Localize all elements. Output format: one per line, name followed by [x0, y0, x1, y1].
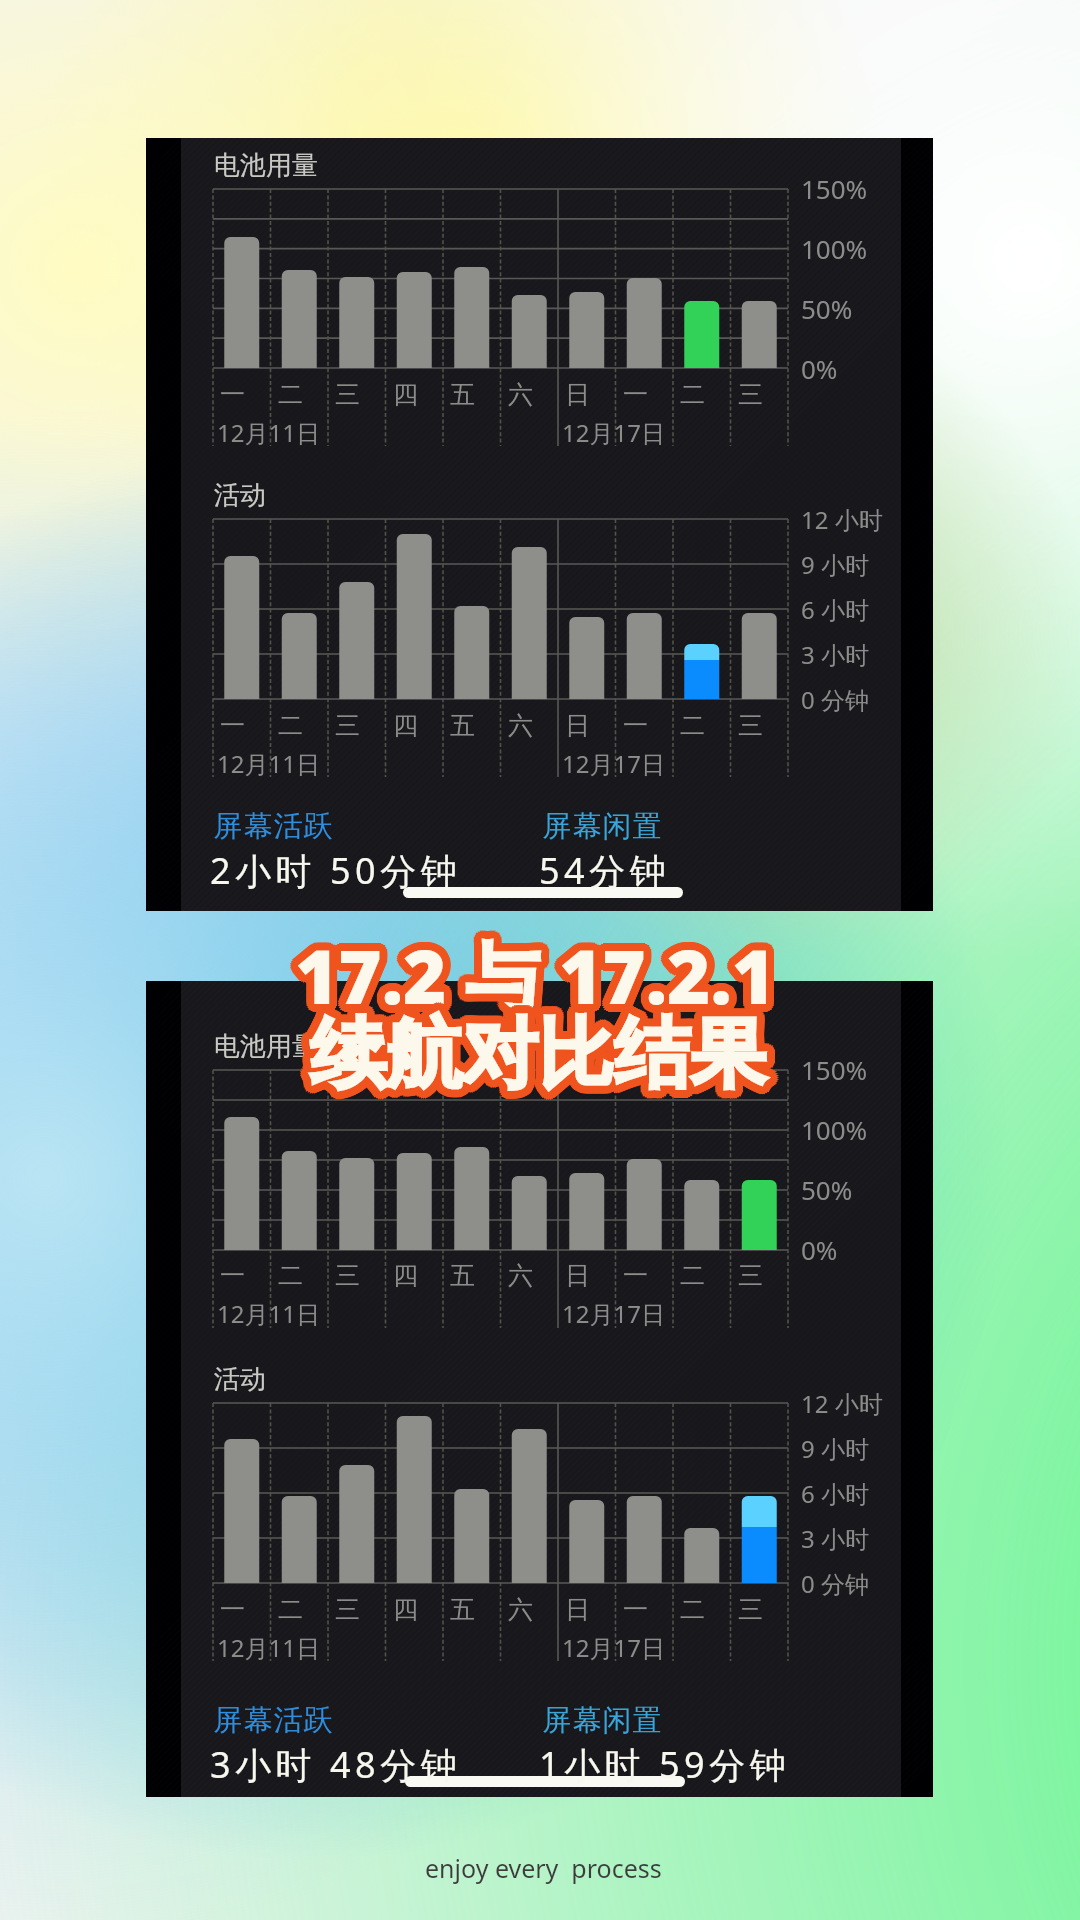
staticText: 续航对比结果 — [312, 999, 768, 1095]
staticText: 续航对比结果 — [314, 1000, 770, 1096]
staticText: 续航对比结果 — [316, 1013, 772, 1109]
staticText: 9 小时 — [801, 1432, 869, 1465]
staticText: 12月11日 — [217, 747, 320, 780]
staticText: 屏幕活跃 — [213, 808, 333, 845]
staticText: 四 — [393, 1260, 418, 1291]
staticText: 17.2 与 17.2.1 — [291, 932, 772, 1033]
staticText: 一 — [220, 379, 245, 410]
staticText: 17.2 与 17.2.1 — [297, 917, 778, 1018]
staticText: 三 — [738, 710, 763, 741]
staticText: 1小时 59分钟 — [539, 1740, 791, 1789]
staticText: 五 — [450, 379, 475, 410]
staticText: 12月11日 — [217, 1297, 320, 1330]
staticText: 12 小时 — [801, 503, 883, 536]
staticText: 活动 — [214, 1363, 266, 1396]
staticText: 100% — [801, 1112, 868, 1147]
staticText: 六 — [508, 710, 533, 741]
staticText: 续航对比结果 — [302, 1005, 758, 1101]
staticText: 续航对比结果 — [302, 1009, 758, 1105]
staticText: 3 小时 — [801, 638, 869, 671]
staticText: 三 — [335, 1594, 360, 1625]
staticText: 四 — [393, 379, 418, 410]
staticText: 六 — [508, 1260, 533, 1291]
staticText: 二 — [680, 1260, 705, 1291]
staticText: 五 — [450, 1594, 475, 1625]
staticText: 三 — [335, 379, 360, 410]
staticText: 续航对比结果 — [310, 999, 766, 1095]
staticText: 二 — [278, 1260, 303, 1291]
staticText: 日 — [565, 1260, 590, 1291]
staticText: 续航对比结果 — [308, 1015, 764, 1111]
staticText: 日 — [565, 1594, 590, 1625]
staticText: 续航对比结果 — [304, 1013, 760, 1109]
staticText: 0% — [801, 1232, 838, 1267]
staticText: 3 小时 — [801, 1522, 869, 1555]
staticText: 屏幕闲置 — [542, 808, 662, 845]
staticText: 17.2 与 17.2.1 — [289, 919, 770, 1020]
staticText: 17.2 与 17.2.1 — [301, 931, 782, 1032]
button[interactable]: enjoy every process — [415, 1843, 665, 1887]
staticText: 12月11日 — [217, 416, 320, 449]
staticText: 六 — [508, 379, 533, 410]
staticText: 续航对比结果 — [303, 1003, 759, 1099]
staticText: 50% — [801, 1172, 853, 1207]
staticText: 12月17日 — [562, 747, 665, 780]
staticText: 一 — [220, 1594, 245, 1625]
staticText: 屏幕活跃 — [213, 1702, 333, 1739]
staticText: 三 — [738, 379, 763, 410]
staticText: 150% — [801, 1052, 868, 1087]
staticText: 屏幕闲置 — [542, 1702, 662, 1739]
staticText: 二 — [278, 379, 303, 410]
staticText: 二 — [278, 710, 303, 741]
staticText: 17.2 与 17.2.1 — [303, 927, 784, 1028]
staticText: 六 — [508, 1594, 533, 1625]
staticText: 续航对比结果 — [317, 1011, 773, 1107]
staticText: 续航对比结果 — [302, 1007, 758, 1103]
staticText: 四 — [393, 1594, 418, 1625]
staticText: 12月17日 — [562, 1631, 665, 1664]
staticText: 续航对比结果 — [303, 1011, 759, 1107]
staticText: 17.2 与 17.2.1 — [287, 927, 768, 1028]
staticText: 日 — [565, 710, 590, 741]
staticText: 续航对比结果 — [318, 1005, 774, 1101]
staticText: 电池用量 — [214, 1030, 318, 1063]
staticText: 150% — [801, 171, 868, 206]
staticText: 0 分钟 — [801, 1567, 869, 1600]
staticText: 17.2 与 17.2.1 — [295, 933, 776, 1034]
staticText: 17.2 与 17.2.1 — [303, 925, 784, 1026]
button[interactable]: iOS 17.2 battery screenshot — [146, 138, 933, 911]
staticText: 电池用量 — [214, 149, 318, 182]
staticText: 100% — [801, 231, 868, 266]
staticText: 17.2 与 17.2.1 — [303, 923, 784, 1024]
staticText: 17.2 与 17.2.1 — [297, 933, 778, 1034]
staticText: 12 小时 — [801, 1387, 883, 1420]
staticText: 12月17日 — [562, 1297, 665, 1330]
staticText: 一 — [623, 379, 648, 410]
staticText: 50% — [801, 291, 853, 326]
staticText: 6 小时 — [801, 1477, 869, 1510]
staticText: 54分钟 — [539, 846, 671, 895]
staticText: 续航对比结果 — [314, 1014, 770, 1110]
staticText: 续航对比结果 — [316, 1001, 772, 1097]
staticText: 17.2 与 17.2.1 — [289, 931, 770, 1032]
button[interactable]: iOS 17.2.1 battery screenshot — [146, 981, 933, 1797]
staticText: 9 小时 — [801, 548, 869, 581]
staticText: 续航对比结果 — [318, 1009, 774, 1105]
staticText: 一 — [623, 1594, 648, 1625]
staticText: 17.2 与 17.2.1 — [295, 917, 776, 1018]
staticText: 0 分钟 — [801, 683, 869, 716]
staticText: 五 — [450, 1260, 475, 1291]
staticText: 6 小时 — [801, 593, 869, 626]
staticText: 3小时 48分钟 — [210, 1740, 462, 1789]
staticText: 17.2 与 17.2.1 — [295, 925, 776, 1026]
staticText: 17.2 与 17.2.1 — [299, 932, 780, 1033]
staticText: 续航对比结果 — [308, 999, 764, 1095]
staticText: 续航对比结果 — [310, 1015, 766, 1111]
staticText: 日 — [565, 379, 590, 410]
staticText: 五 — [450, 710, 475, 741]
staticText: 三 — [335, 1260, 360, 1291]
staticText: 一 — [623, 1260, 648, 1291]
staticText: 17.2 与 17.2.1 — [299, 918, 780, 1019]
staticText: 三 — [738, 1594, 763, 1625]
staticText: 17.2 与 17.2.1 — [287, 925, 768, 1026]
